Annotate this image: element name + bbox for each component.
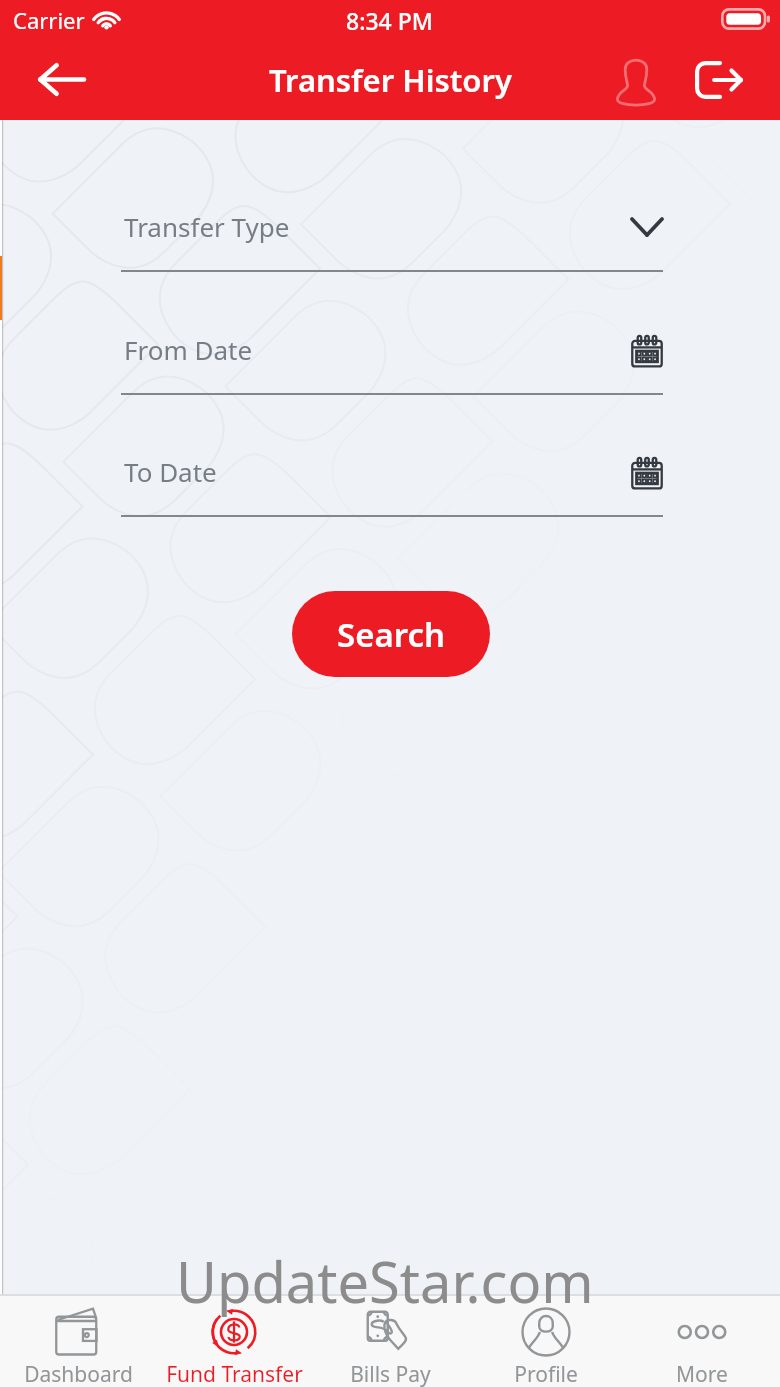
button[interactable]: Fund Transfer — [156, 1296, 312, 1387]
staticText: More — [676, 1360, 728, 1387]
staticText: Fund Transfer — [166, 1360, 303, 1387]
button[interactable]: Logout — [687, 50, 750, 110]
button[interactable]: More — [624, 1296, 780, 1387]
staticText: Transfer Type — [124, 209, 290, 244]
staticText: Transfer History — [269, 59, 512, 101]
button[interactable]: Dashboard — [0, 1296, 156, 1387]
staticText: 8:34 PM — [346, 5, 433, 36]
staticText: From Date — [124, 332, 253, 367]
staticText: To Date — [124, 454, 217, 489]
button[interactable]: Back — [24, 52, 97, 106]
staticText: Search — [337, 612, 446, 657]
button[interactable]: Search — [292, 591, 490, 677]
staticText: Carrier — [13, 5, 85, 35]
button[interactable]: Bills Pay — [312, 1296, 468, 1387]
staticText: Dashboard — [24, 1360, 133, 1387]
staticText: Bills Pay — [350, 1360, 431, 1387]
staticText: UpdateStar.com — [176, 1243, 594, 1319]
button[interactable]: Transfer Type — [121, 198, 663, 272]
button[interactable]: Profile — [604, 50, 667, 110]
button[interactable]: From Date — [121, 321, 663, 395]
staticText: Profile — [514, 1360, 578, 1387]
button[interactable]: To Date — [121, 443, 663, 517]
button[interactable]: Profile — [468, 1296, 624, 1387]
